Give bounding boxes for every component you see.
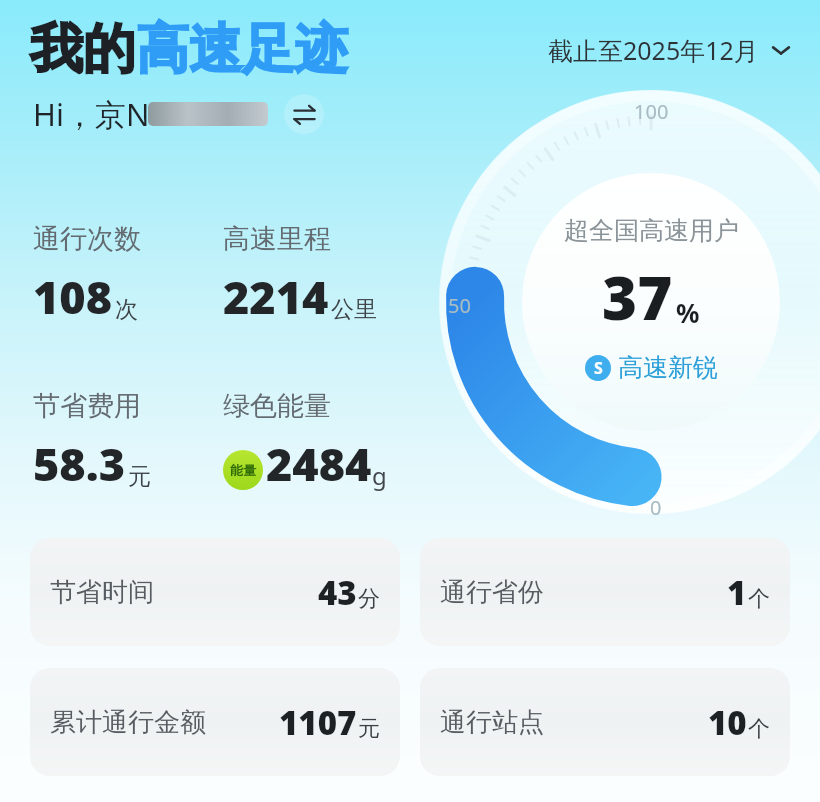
button[interactable]: 截止至2025年12月	[544, 27, 796, 73]
staticText: 个	[748, 585, 770, 613]
staticText: 个	[748, 715, 770, 743]
staticText: 50	[448, 292, 471, 319]
staticText: 通行省份	[440, 576, 544, 609]
staticText: g	[372, 459, 387, 492]
staticText: S	[594, 357, 603, 379]
staticText: 2484	[266, 433, 372, 494]
staticText: %	[676, 295, 700, 330]
staticText: 43	[318, 570, 357, 615]
staticText: 次	[115, 295, 138, 324]
staticText: 0	[650, 494, 662, 521]
staticText: 108	[33, 266, 113, 327]
staticText: 元	[358, 715, 380, 743]
button[interactable]: 节省费用	[33, 389, 223, 494]
button[interactable]: 通行站点	[420, 668, 790, 776]
staticText: 37	[602, 256, 673, 338]
staticText: 节省费用	[33, 389, 141, 423]
button[interactable]: 累计通行金额	[30, 668, 400, 776]
staticText: 能量	[230, 462, 256, 478]
staticText: 超全国高速用户	[564, 215, 739, 246]
staticText: 1107	[279, 700, 357, 745]
staticText: 高速里程	[223, 222, 331, 256]
button[interactable]: S	[581, 350, 722, 385]
staticText: 通行次数	[33, 222, 141, 256]
button[interactable]: 通行次数	[33, 222, 223, 327]
button[interactable]: 绿色能量	[223, 389, 387, 494]
staticText: 1	[727, 570, 747, 615]
staticText: 高速新锐	[618, 352, 718, 383]
button[interactable]: 高速里程	[223, 222, 423, 327]
staticText: 100	[634, 98, 669, 125]
button[interactable]: 节省时间	[30, 538, 400, 646]
staticText: Hi，京N	[33, 93, 150, 135]
staticText: 公里	[331, 295, 377, 324]
button[interactable]: Hi，京N	[33, 91, 324, 137]
staticText: 58.3	[33, 433, 126, 494]
button[interactable]: 通行省份	[420, 538, 790, 646]
staticText: 2214	[223, 266, 329, 327]
other: 选择统计月份	[770, 39, 792, 61]
staticText: 我的	[30, 16, 136, 83]
staticText: 通行站点	[440, 706, 544, 739]
staticText: 累计通行金额	[50, 706, 206, 739]
staticText: 元	[128, 462, 151, 491]
staticText: 高速足迹	[136, 16, 348, 83]
staticText: 截止至2025年12月	[548, 33, 759, 67]
staticText: 节省时间	[50, 576, 154, 609]
staticText: 绿色能量	[223, 389, 331, 423]
staticText: 10	[708, 700, 747, 745]
button[interactable]: 切换车辆	[284, 94, 324, 134]
staticText: 分	[358, 585, 380, 613]
